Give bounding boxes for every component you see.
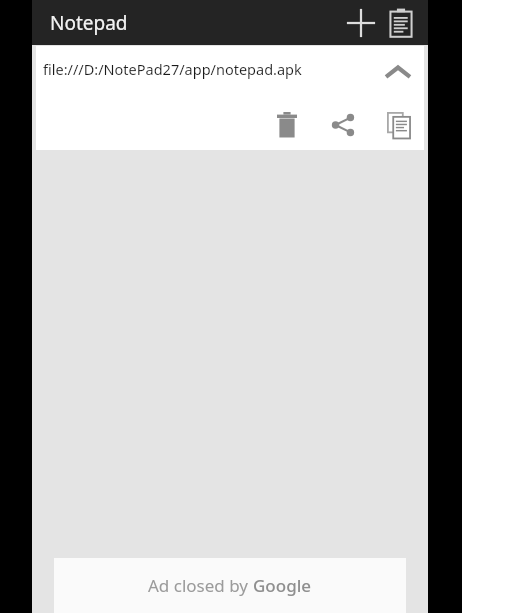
button[interactable]: Collapse [376,50,420,94]
button[interactable]: Delete [264,102,310,148]
staticText: Notepad [50,10,128,36]
staticText: Ad closed by [148,574,253,597]
staticText: file:///D:/NotePad27/app/notepad.apk [43,59,302,79]
button[interactable]: Share [320,102,366,148]
button[interactable]: Ad closed by [54,558,406,613]
button[interactable]: Add note [338,0,383,45]
staticText: Google [253,574,312,597]
button[interactable]: file:///D:/NotePad27/app/notepad.apk [36,46,424,150]
button[interactable]: Notes list [378,0,423,45]
button[interactable]: Copy [376,102,422,148]
